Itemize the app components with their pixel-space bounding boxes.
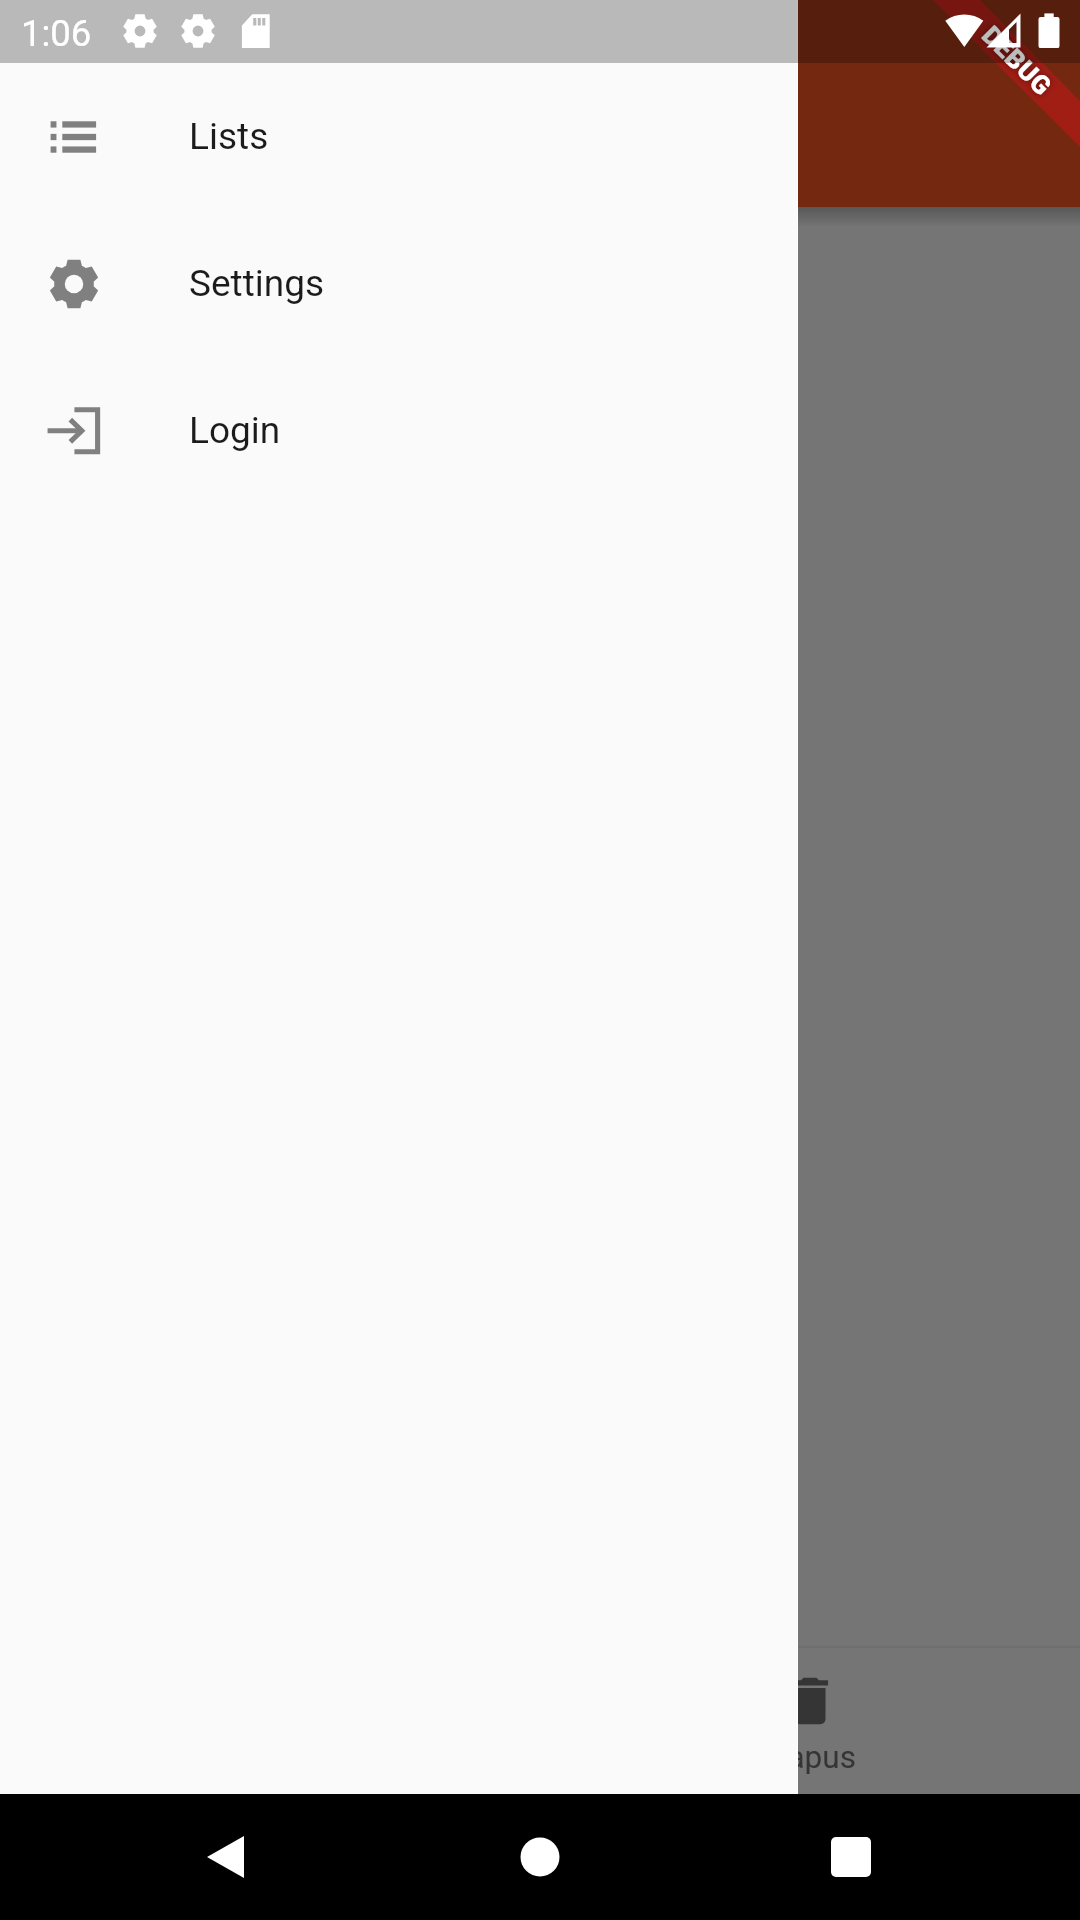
- button[interactable]: Hapus: [540, 1648, 1080, 1794]
- staticText: 1:06: [21, 12, 92, 55]
- button[interactable]: Lists: [0, 63, 798, 210]
- staticText: Lists: [189, 115, 269, 158]
- button[interactable]: Close navigation menu: [0, 0, 1080, 1794]
- button[interactable]: Login: [0, 357, 798, 504]
- staticText: Hapus: [765, 1739, 856, 1776]
- staticText: Login: [189, 409, 281, 452]
- button[interactable]: Recent apps: [788, 1794, 914, 1920]
- button[interactable]: Back: [162, 1794, 288, 1920]
- staticText: Settings: [189, 262, 325, 305]
- button[interactable]: Settings: [0, 210, 798, 357]
- staticText: DEBUG: [976, 20, 1058, 102]
- button[interactable]: Home: [477, 1794, 603, 1920]
